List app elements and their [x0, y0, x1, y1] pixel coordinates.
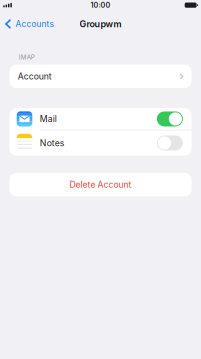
- button[interactable]: Accounts: [0, 16, 53, 32]
- button[interactable]: Mail: [9, 108, 191, 130]
- button[interactable]: Notes: [9, 130, 191, 156]
- staticText: IMAP: [19, 53, 35, 61]
- staticText: Notes: [40, 138, 65, 148]
- button[interactable]: Delete Account: [9, 173, 191, 196]
- staticText: Delete Account: [69, 179, 131, 190]
- staticText: Mail: [40, 114, 57, 124]
- staticText: Groupwm: [79, 18, 121, 29]
- button[interactable]: Account: [9, 65, 191, 88]
- staticText: 10:00: [90, 1, 110, 9]
- staticText: Account: [18, 71, 52, 82]
- staticText: Accounts: [15, 19, 53, 29]
